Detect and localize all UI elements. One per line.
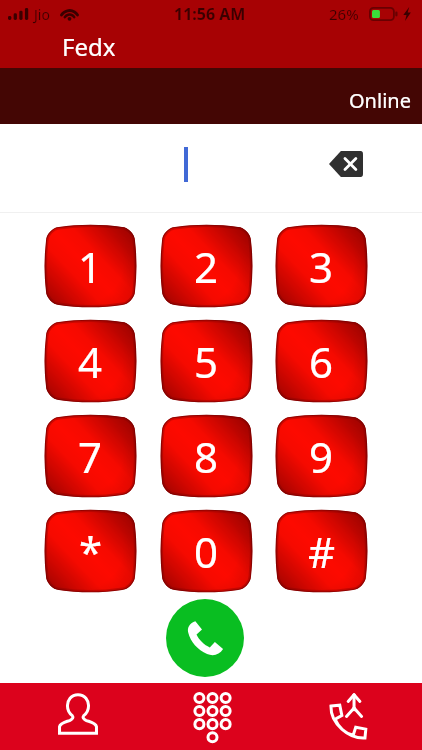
button[interactable]: 2 <box>162 227 251 305</box>
staticText: 7 <box>78 428 103 485</box>
button[interactable]: 5 <box>162 322 251 400</box>
button[interactable]: 3 <box>277 227 366 305</box>
staticText: 9 <box>309 428 334 485</box>
staticText: 1 <box>78 238 103 295</box>
staticText: 4 <box>78 333 103 390</box>
button[interactable]: 7 <box>46 417 135 495</box>
staticText: Jio <box>34 5 50 24</box>
button[interactable]: Backspace <box>317 144 374 184</box>
button[interactable]: Recent calls <box>281 683 422 750</box>
staticText: 26% <box>329 4 359 24</box>
staticText: 8 <box>194 428 219 485</box>
staticText: 5 <box>194 333 219 390</box>
staticText: # <box>308 523 336 580</box>
button[interactable]: Fedx <box>62 30 116 63</box>
staticText: 2 <box>194 238 219 295</box>
button[interactable]: 4 <box>46 322 135 400</box>
button[interactable]: # <box>277 512 366 590</box>
staticText: * <box>79 523 103 580</box>
button[interactable]: 9 <box>277 417 366 495</box>
button[interactable]: Dialpad <box>140 683 281 750</box>
staticText: 3 <box>309 238 334 295</box>
button[interactable]: Online <box>349 87 411 114</box>
button[interactable]: 8 <box>162 417 251 495</box>
button[interactable]: 1 <box>46 227 135 305</box>
staticText: 11:56 AM <box>174 3 246 25</box>
button[interactable]: Call <box>166 599 244 677</box>
button[interactable]: * <box>46 512 135 590</box>
staticText: 6 <box>309 333 334 390</box>
button[interactable]: Contacts <box>0 683 140 750</box>
button[interactable]: 0 <box>162 512 251 590</box>
staticText: 0 <box>194 523 219 580</box>
button[interactable]: 6 <box>277 322 366 400</box>
